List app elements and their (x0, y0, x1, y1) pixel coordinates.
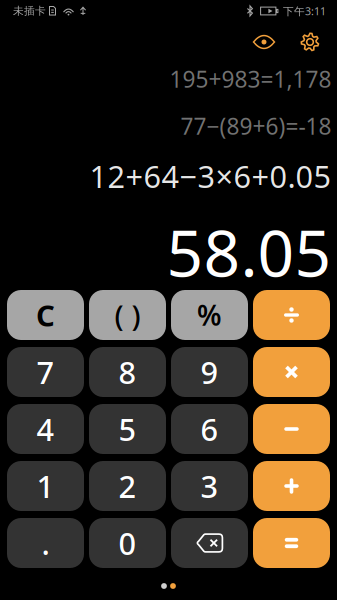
staticText: . (41, 523, 49, 563)
button[interactable]: 8 (89, 347, 166, 397)
button[interactable]: 0 (89, 518, 166, 568)
staticText: 195+983=1,178 (169, 64, 331, 94)
staticText: ( ) (114, 295, 140, 334)
button[interactable]: ( ) (89, 290, 166, 340)
button[interactable]: 1 (7, 461, 84, 511)
staticText: 未插卡 (13, 4, 46, 17)
button[interactable]: Minus (253, 404, 330, 454)
button[interactable]: Plus (253, 461, 330, 511)
button[interactable]: C (7, 290, 84, 340)
staticText: 1 (36, 466, 54, 506)
staticText: 9 (200, 352, 218, 392)
button[interactable]: 4 (7, 404, 84, 454)
button[interactable]: Multiply (253, 347, 330, 397)
button[interactable]: 9 (171, 347, 248, 397)
staticText: 0 (118, 523, 136, 563)
button[interactable]: Delete (171, 518, 248, 568)
button[interactable]: 2 (89, 461, 166, 511)
button[interactable]: 5 (89, 404, 166, 454)
button[interactable]: History (243, 22, 285, 56)
staticText: 2 (118, 466, 136, 506)
button[interactable]: Equals (253, 518, 330, 568)
staticText: % (197, 296, 222, 334)
staticText: 58.05 (166, 209, 331, 294)
button[interactable]: 3 (171, 461, 248, 511)
button[interactable]: 7 (7, 347, 84, 397)
button[interactable]: . (7, 518, 84, 568)
staticText: C (36, 295, 55, 334)
button[interactable]: Divide (253, 290, 330, 340)
staticText: 4 (36, 409, 54, 449)
staticText: 3 (200, 466, 218, 506)
staticText: 77−(89+6)=-18 (180, 111, 331, 141)
staticText: 7 (36, 352, 54, 392)
staticText: 8 (118, 352, 136, 392)
button[interactable]: Settings (292, 22, 328, 56)
staticText: 下午3:11 (283, 4, 326, 18)
staticText: 12+64−3×6+0.05 (89, 156, 331, 196)
button[interactable]: 6 (171, 404, 248, 454)
staticText: 6 (200, 409, 218, 449)
button[interactable]: % (171, 290, 248, 340)
staticText: 5 (118, 409, 136, 449)
